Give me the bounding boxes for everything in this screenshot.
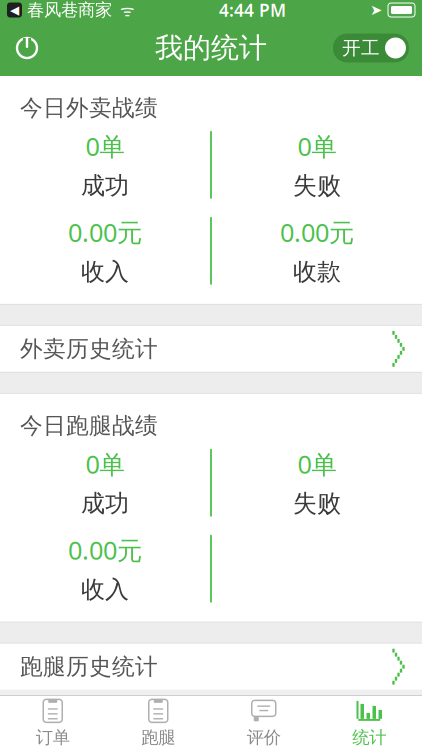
staticText: 0单	[297, 129, 336, 163]
staticText: ➤	[370, 2, 382, 18]
staticText: 4:44 PM	[219, 0, 286, 21]
staticText: 0.00元	[68, 215, 142, 249]
staticText: 外卖历史统计	[20, 335, 158, 363]
staticText: 失败	[293, 489, 341, 518]
staticText: 收入	[81, 257, 129, 286]
staticText: 成功	[81, 489, 129, 518]
staticText: 评价	[247, 727, 281, 748]
button[interactable]: 跑腿历史统计	[0, 644, 422, 690]
staticText: 失败	[293, 171, 341, 200]
button[interactable]: 统计	[316, 696, 422, 750]
button[interactable]: 外卖历史统计	[0, 326, 422, 372]
staticText: 0单	[297, 447, 336, 481]
staticText: 0.00元	[68, 533, 142, 567]
button[interactable]: 跑腿	[105, 696, 211, 750]
button[interactable]: 订单	[0, 696, 105, 750]
staticText: 成功	[81, 171, 129, 200]
staticText: 开工	[342, 36, 380, 59]
staticText: 0单	[85, 129, 124, 163]
staticText: 收款	[293, 257, 341, 286]
staticText: 订单	[36, 727, 70, 748]
staticText: ◀	[10, 3, 19, 17]
staticText: 0.00元	[280, 215, 354, 249]
staticText: 跑腿历史统计	[20, 653, 158, 681]
staticText: ᯤ	[112, 0, 135, 21]
button[interactable]: 开工	[333, 33, 409, 62]
button[interactable]: 电源	[0, 20, 54, 76]
staticText: 今日跑腿战绩	[20, 412, 158, 440]
staticText: 今日外卖战绩	[20, 94, 158, 122]
staticText: 收入	[81, 575, 129, 604]
staticText: 统计	[352, 727, 386, 748]
staticText: 跑腿	[141, 727, 175, 748]
staticText: 0单	[85, 447, 124, 481]
staticText: 春风巷商家	[22, 0, 112, 21]
button[interactable]: 评价	[211, 696, 316, 750]
staticText: 我的统计	[155, 31, 267, 65]
